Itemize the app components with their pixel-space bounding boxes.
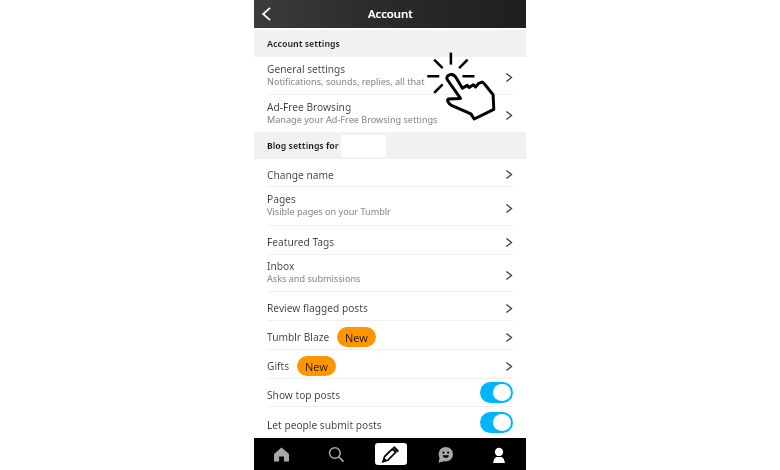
- button[interactable]: Account: [472, 438, 526, 470]
- button[interactable]: Review flagged posts: [254, 292, 526, 320]
- button[interactable]: Compose post: [364, 438, 418, 470]
- staticText: Blog settings for: [267, 140, 339, 152]
- button[interactable]: Ad-Free Browsing: [254, 95, 526, 132]
- staticText: Review flagged posts: [267, 301, 368, 315]
- button[interactable]: General settings: [254, 57, 526, 94]
- button[interactable]: Tumblr Blaze: [254, 321, 526, 349]
- button[interactable]: Search: [309, 438, 364, 470]
- button[interactable]: Pages: [254, 187, 526, 225]
- button[interactable]: Featured Tags: [254, 226, 526, 254]
- staticText: Show top posts: [267, 388, 341, 402]
- staticText: New: [305, 359, 328, 374]
- button[interactable]: Show top posts: [254, 379, 526, 406]
- button[interactable]: Home: [254, 438, 309, 470]
- staticText: Pages: [267, 192, 296, 206]
- staticText: Let people submit posts: [267, 418, 382, 432]
- staticText: Visible pages on your Tumblr: [267, 205, 391, 217]
- staticText: Change name: [267, 168, 334, 182]
- button[interactable]: Back: [254, 0, 282, 28]
- staticText: General settings: [267, 62, 346, 76]
- staticText: Notifications, sounds, replies, all that: [267, 75, 425, 87]
- staticText: Ad-Free Browsing: [267, 100, 352, 114]
- button[interactable]: Inbox: [254, 255, 526, 291]
- button[interactable]: Toggle Show top posts: [480, 382, 513, 403]
- staticText: Tumblr Blaze: [267, 330, 330, 344]
- staticText: Inbox: [267, 259, 295, 273]
- staticText: Account settings: [267, 38, 340, 50]
- staticText: Manage your Ad-Free Browsing settings: [267, 113, 438, 125]
- staticText: Asks and submissions: [267, 272, 361, 284]
- staticText: Featured Tags: [267, 235, 335, 249]
- staticText: Account: [368, 6, 413, 22]
- button[interactable]: Toggle Let people submit posts: [480, 412, 513, 433]
- button[interactable]: Gifts: [254, 350, 526, 378]
- staticText: New: [345, 330, 368, 345]
- button[interactable]: Let people submit posts: [254, 407, 526, 438]
- staticText: Gifts: [267, 359, 290, 373]
- button[interactable]: Messages: [418, 438, 472, 470]
- button[interactable]: Change name: [254, 159, 526, 186]
